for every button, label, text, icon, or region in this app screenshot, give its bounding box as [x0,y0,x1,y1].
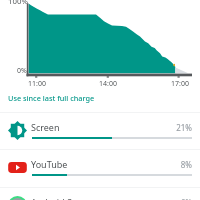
staticText: Android System [31,196,98,200]
button[interactable]: YouTube [0,149,200,186]
staticText: YouTube [31,158,68,170]
staticText: 0% [17,66,27,76]
staticText: 100% [8,0,28,7]
staticText: 21% [160,122,192,133]
staticText: Screen [31,121,60,133]
button[interactable]: Use since last full charge [8,93,95,103]
staticText: 14:00 [99,79,117,89]
button[interactable]: Android System [0,187,200,200]
staticText: 8% [160,159,192,170]
button[interactable]: Screen [0,112,200,149]
staticText: 6% [160,197,192,200]
staticText: 17:00 [171,79,189,89]
staticText: 11:00 [28,79,46,89]
